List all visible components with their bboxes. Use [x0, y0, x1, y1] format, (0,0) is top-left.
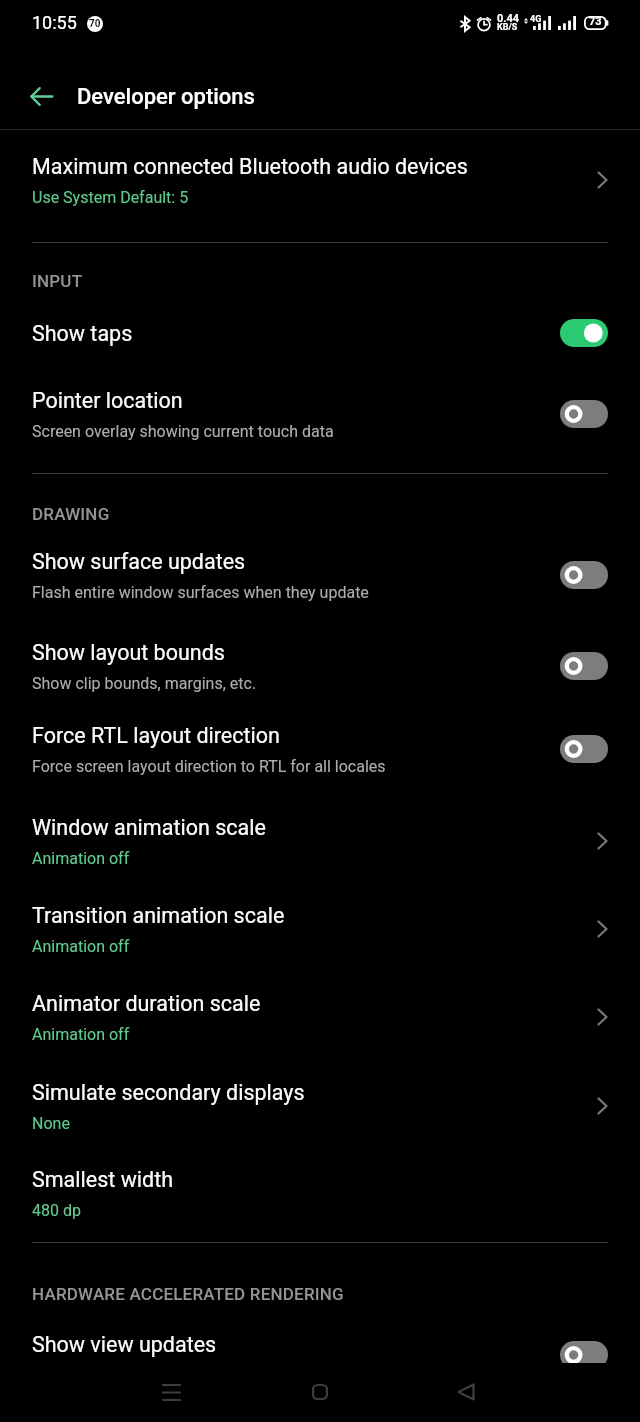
- button[interactable]: Toggle on: [560, 319, 608, 347]
- staticText: Screen overlay showing current touch dat…: [32, 422, 334, 441]
- staticText: Pointer location: [32, 388, 183, 413]
- staticText: Window animation scale: [32, 815, 266, 840]
- staticText: Animator duration scale: [32, 991, 261, 1016]
- button[interactable]: Toggle off: [560, 400, 608, 428]
- button[interactable]: Toggle off: [560, 561, 608, 589]
- staticText: 0.44: [497, 12, 520, 25]
- button[interactable]: Open: [586, 1001, 618, 1033]
- button[interactable]: Pointer location: [0, 370, 640, 458]
- button[interactable]: Show taps: [0, 289, 640, 377]
- staticText: Show taps: [32, 321, 133, 346]
- button[interactable]: Window animation scale: [0, 797, 640, 885]
- staticText: Show view updates: [32, 1332, 217, 1357]
- staticText: Force RTL layout direction: [32, 723, 280, 748]
- staticText: Use System Default: 5: [32, 188, 189, 207]
- button[interactable]: Open: [586, 164, 618, 196]
- staticText: Show clip bounds, margins, etc.: [32, 674, 257, 693]
- staticText: Smallest width: [32, 1167, 174, 1192]
- button[interactable]: Show layout bounds: [0, 622, 640, 710]
- button[interactable]: Open: [586, 913, 618, 945]
- staticText: Animation off: [32, 1025, 130, 1044]
- staticText: Animation off: [32, 849, 130, 868]
- staticText: 73: [589, 15, 602, 28]
- staticText: Flash entire window surfaces when they u…: [32, 583, 369, 602]
- button[interactable]: Transition animation scale: [0, 885, 640, 973]
- staticText: Simulate secondary displays: [32, 1080, 305, 1105]
- staticText: HARDWARE ACCELERATED RENDERING: [32, 1284, 344, 1304]
- button[interactable]: Force RTL layout direction: [0, 705, 640, 793]
- button[interactable]: Open: [586, 825, 618, 857]
- button[interactable]: Back: [19, 74, 63, 118]
- staticText: Show surface updates: [32, 549, 246, 574]
- button[interactable]: Animator duration scale: [0, 973, 640, 1061]
- staticText: Animation off: [32, 937, 130, 956]
- staticText: Transition animation scale: [32, 903, 285, 928]
- button[interactable]: Toggle off: [560, 652, 608, 680]
- button[interactable]: Toggle off: [560, 735, 608, 763]
- button[interactable]: Open: [586, 1090, 618, 1122]
- button[interactable]: Smallest width: [0, 1149, 640, 1237]
- button[interactable]: Recent apps: [141, 1362, 201, 1422]
- button[interactable]: Show view updates: [0, 1311, 640, 1363]
- staticText: 10:55: [32, 12, 77, 33]
- staticText: 480 dp: [32, 1201, 81, 1220]
- staticText: Show layout bounds: [32, 640, 225, 665]
- button[interactable]: Show surface updates: [0, 531, 640, 619]
- staticText: Force screen layout direction to RTL for…: [32, 757, 386, 776]
- button[interactable]: Maximum connected Bluetooth audio device…: [0, 136, 640, 224]
- button[interactable]: Back: [436, 1362, 496, 1422]
- staticText: 4G: [530, 14, 542, 25]
- button[interactable]: Simulate secondary displays: [0, 1062, 640, 1150]
- staticText: Maximum connected Bluetooth audio device…: [32, 154, 468, 179]
- staticText: 70: [89, 18, 101, 30]
- staticText: None: [32, 1114, 70, 1133]
- staticText: KB/S: [497, 22, 518, 33]
- staticText: Developer options: [77, 84, 255, 110]
- button[interactable]: Home: [290, 1362, 350, 1422]
- staticText: DRAWING: [32, 504, 110, 524]
- button[interactable]: Toggle off: [560, 1341, 608, 1363]
- staticText: INPUT: [32, 271, 83, 291]
